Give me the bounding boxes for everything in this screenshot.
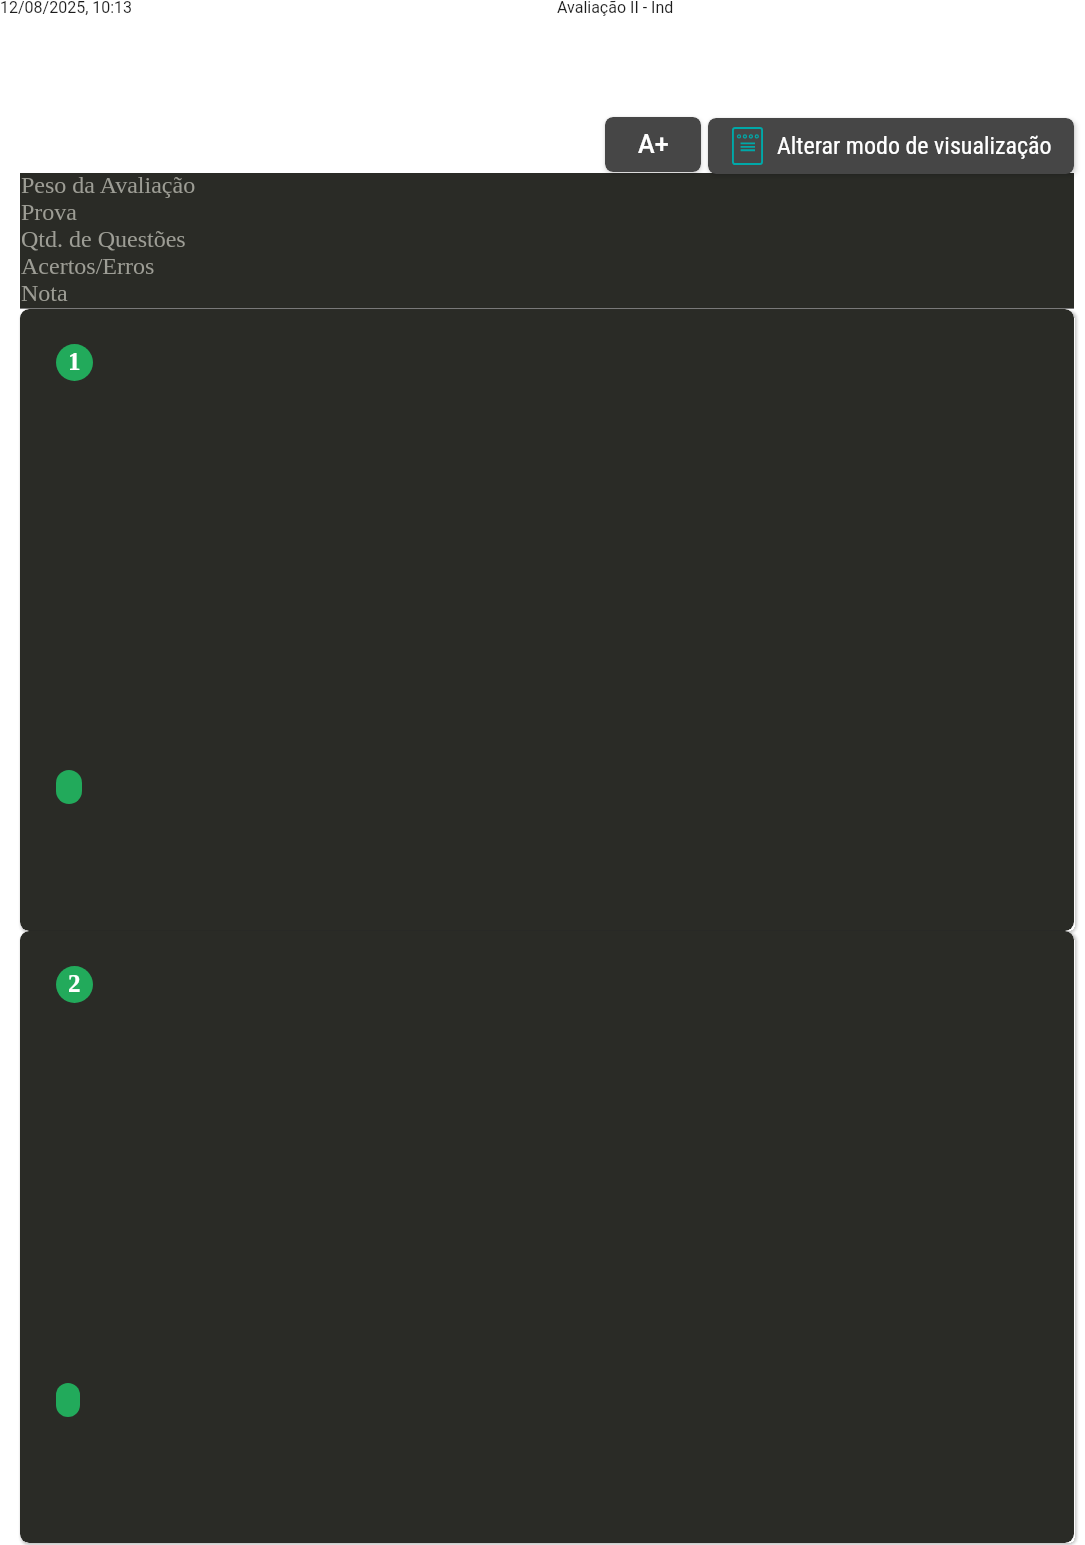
staticText: 12/08/2025, 10:13: [0, 0, 133, 17]
staticText: Qtd. de Questões: [21, 226, 186, 253]
staticText: A+: [638, 130, 669, 159]
button[interactable]: Alterar modo de visualização: [708, 118, 1074, 174]
staticText: Prova: [21, 199, 77, 226]
staticText: Peso da Avaliação: [21, 172, 196, 199]
button[interactable]: A+: [605, 117, 701, 172]
staticText: 1: [68, 348, 81, 376]
staticText: Alterar modo de visualização: [777, 132, 1052, 160]
staticText: Nota: [21, 280, 68, 307]
staticText: Avaliação II - Ind: [557, 0, 674, 17]
staticText: Acertos/Erros: [21, 253, 155, 280]
other: Alterar modo de visualização: [732, 127, 763, 165]
staticText: 2: [68, 970, 81, 998]
